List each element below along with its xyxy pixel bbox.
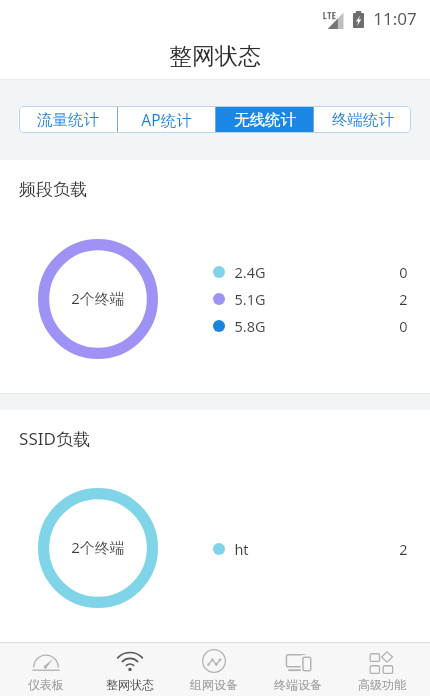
staticText: 高级功能	[358, 677, 406, 692]
staticText: 0	[399, 262, 408, 282]
staticText: 2.4G	[234, 262, 266, 282]
staticText: 频段负载	[19, 179, 87, 200]
button[interactable]: 整网状态	[88, 643, 172, 696]
button[interactable]: 终端统计	[314, 106, 411, 133]
staticText: 11:07	[373, 7, 417, 30]
button[interactable]: 流量统计	[19, 106, 117, 133]
staticText: SSID负载	[19, 427, 90, 449]
staticText: 2	[399, 539, 408, 559]
button[interactable]: 高级功能	[340, 643, 424, 696]
staticText: 流量统计	[37, 110, 99, 130]
staticText: 整网状态	[169, 42, 261, 71]
staticText: 2	[399, 289, 408, 309]
button[interactable]: 仪表板	[3, 643, 88, 696]
staticText: 整网状态	[106, 677, 154, 692]
staticText: 5.8G	[234, 316, 266, 336]
staticText: 2个终端	[71, 288, 125, 308]
button[interactable]: 终端设备	[256, 643, 340, 696]
other: Battery charging	[353, 11, 364, 28]
button[interactable]: 无线统计	[216, 106, 313, 133]
staticText: 无线统计	[234, 110, 296, 130]
staticText: AP统计	[141, 109, 192, 130]
staticText: 组网设备	[190, 677, 238, 692]
staticText: 终端统计	[332, 110, 394, 130]
button[interactable]: AP统计	[118, 106, 215, 133]
staticText: 5.1G	[234, 289, 266, 309]
staticText: 仪表板	[28, 677, 64, 692]
staticText: 2个终端	[71, 537, 125, 557]
other: LTE signal	[323, 12, 344, 29]
staticText: 终端设备	[274, 677, 322, 692]
button[interactable]: 组网设备	[172, 643, 256, 696]
staticText: ht	[234, 539, 249, 559]
staticText: 0	[399, 316, 408, 336]
